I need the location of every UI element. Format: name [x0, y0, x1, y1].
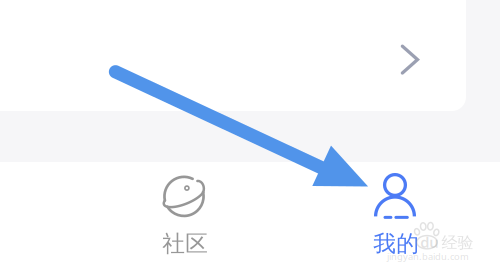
staticText: du — [420, 232, 438, 252]
staticText: jingyan.baidu.com — [387, 250, 469, 263]
button[interactable]: 我的 — [343, 162, 447, 262]
button[interactable]: 社区 — [132, 162, 236, 262]
staticText: 我的 — [373, 230, 419, 258]
button[interactable]: Open — [387, 37, 431, 81]
staticText: 经验 — [441, 233, 473, 252]
staticText: 社区 — [162, 230, 208, 258]
